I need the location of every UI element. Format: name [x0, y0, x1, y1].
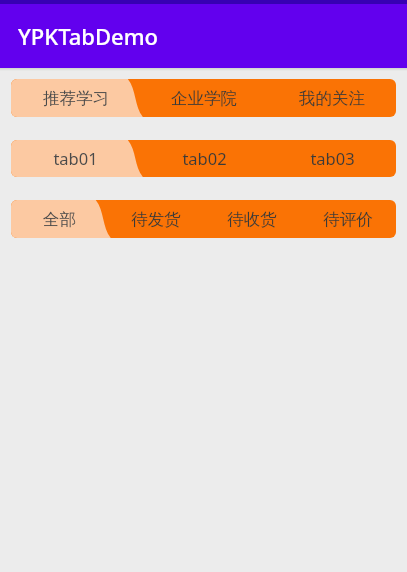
button[interactable]: tab01	[11, 140, 140, 177]
button[interactable]: 待评价	[300, 200, 396, 238]
button[interactable]: 我的关注	[268, 79, 396, 117]
staticText: 待收货	[227, 209, 277, 230]
button[interactable]: 全部	[11, 200, 108, 238]
button[interactable]: 企业学院	[140, 79, 268, 117]
staticText: YPKTabDemo	[18, 21, 158, 51]
staticText: 待评价	[323, 209, 373, 230]
button[interactable]: tab03	[268, 140, 396, 177]
staticText: 全部	[43, 209, 76, 230]
button[interactable]: 推荐学习	[11, 79, 140, 117]
staticText: tab02	[182, 147, 227, 169]
staticText: 推荐学习	[43, 88, 109, 109]
button[interactable]: 待发货	[108, 200, 204, 238]
staticText: 企业学院	[171, 88, 237, 109]
staticText: 我的关注	[299, 88, 365, 109]
staticText: 待发货	[131, 209, 181, 230]
button[interactable]: 待收货	[204, 200, 300, 238]
staticText: tab03	[310, 147, 355, 169]
button[interactable]: tab02	[140, 140, 268, 177]
staticText: tab01	[53, 147, 98, 169]
